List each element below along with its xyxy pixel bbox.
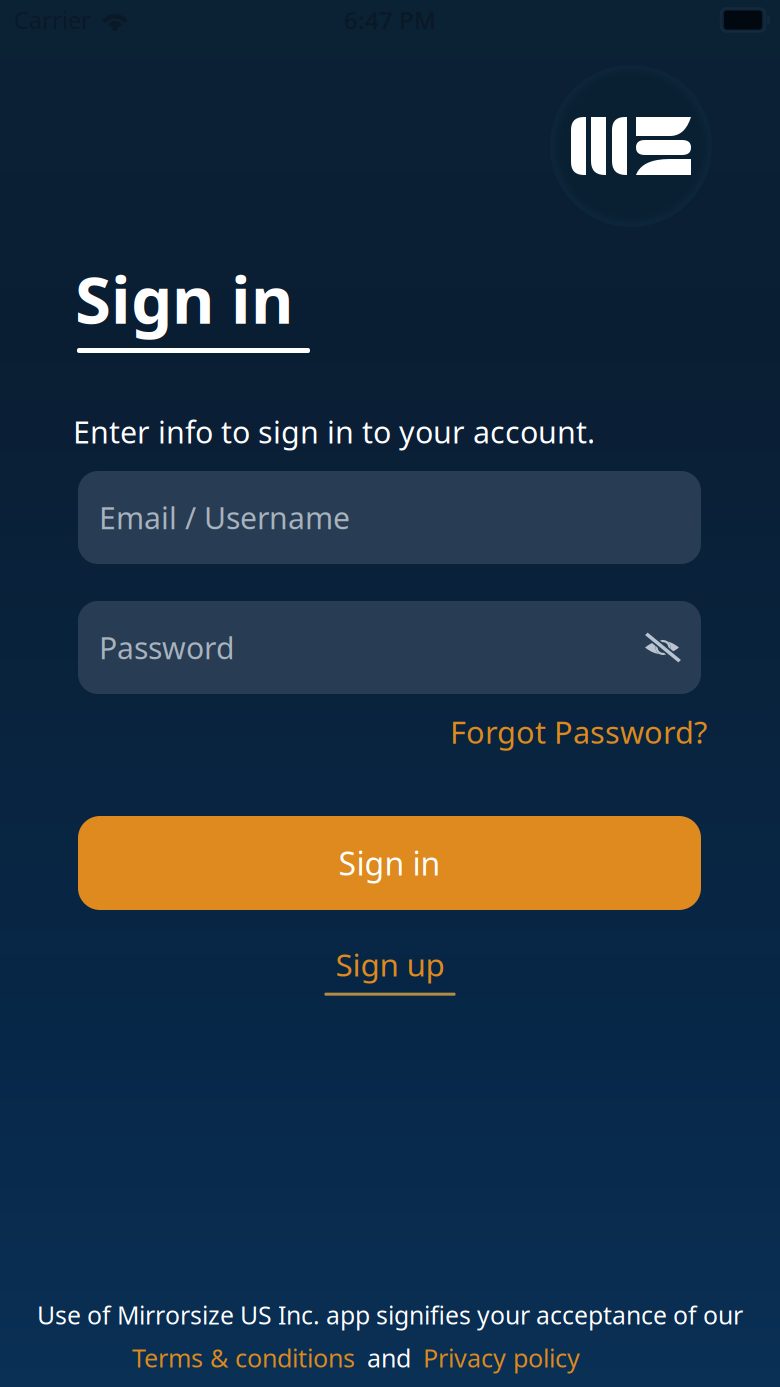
staticText: Sign in	[75, 254, 293, 343]
staticText: Sign up	[335, 943, 444, 986]
staticText: Forgot Password?	[450, 711, 707, 753]
staticText: Terms & conditions	[132, 1341, 355, 1375]
button[interactable]: Forgot Password?	[446, 707, 711, 757]
staticText: 6:47 PM	[344, 4, 436, 36]
button[interactable]: Privacy policy	[423, 1341, 580, 1375]
staticText: Enter info to sign in to your account.	[73, 411, 595, 452]
staticText: Use of Mirrorsize US Inc. app signifies …	[37, 1298, 743, 1332]
button[interactable]: Terms & conditions	[132, 1341, 355, 1375]
staticText: Sign in	[338, 841, 440, 885]
staticText: Email / Username	[99, 497, 350, 538]
staticText: Privacy policy	[423, 1341, 580, 1375]
button[interactable]: Sign in	[78, 816, 701, 910]
staticText: Password	[99, 627, 235, 668]
staticText: and	[367, 1341, 411, 1375]
button[interactable]: Email / Username	[78, 471, 701, 564]
button[interactable]: Password	[78, 601, 701, 694]
staticText: Carrier	[14, 4, 91, 36]
button[interactable]: Sign up	[310, 943, 470, 996]
